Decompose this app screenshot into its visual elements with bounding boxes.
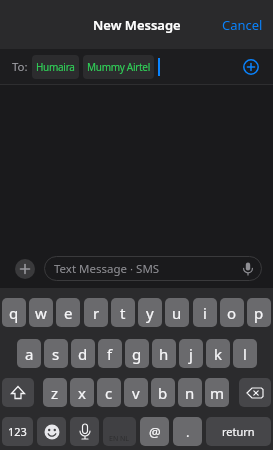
staticText: Humaira — [36, 60, 75, 74]
staticText: m — [210, 383, 225, 403]
staticText: i — [203, 303, 207, 323]
staticText: New Message — [93, 16, 181, 34]
staticText: a — [25, 344, 34, 364]
button[interactable] — [239, 378, 271, 407]
button[interactable]: r — [84, 298, 108, 327]
staticText: f — [107, 344, 113, 364]
staticText: Mummy Airtel — [87, 60, 150, 74]
button[interactable]: o — [220, 298, 244, 327]
staticText: g — [132, 344, 142, 364]
button[interactable]: x — [70, 378, 94, 407]
button[interactable]: s — [44, 339, 68, 368]
button[interactable] — [2, 378, 34, 407]
staticText: l — [243, 344, 247, 364]
button[interactable]: z — [43, 378, 67, 407]
button[interactable]: y — [138, 298, 162, 327]
button[interactable]: @ — [140, 417, 169, 446]
staticText: j — [189, 344, 193, 364]
button[interactable]: v — [124, 378, 148, 407]
staticText: e — [64, 303, 73, 323]
staticText: u — [172, 303, 182, 323]
button[interactable]: g — [125, 339, 149, 368]
button[interactable]: w — [29, 298, 53, 327]
button[interactable]: EN NL — [103, 417, 136, 446]
staticText: 123 — [8, 424, 27, 439]
button[interactable]: a — [17, 339, 41, 368]
button[interactable]: f — [98, 339, 122, 368]
staticText: return — [222, 424, 255, 439]
button[interactable]: k — [206, 339, 230, 368]
button[interactable]: c — [97, 378, 121, 407]
staticText: b — [158, 383, 168, 403]
button[interactable]: m — [205, 378, 229, 407]
button[interactable]: d — [71, 339, 95, 368]
staticText: n — [185, 383, 195, 403]
button[interactable]: e — [56, 298, 80, 327]
button[interactable]: t — [111, 298, 135, 327]
staticText: EN NL — [109, 434, 130, 444]
staticText: h — [159, 344, 169, 364]
button[interactable]: b — [151, 378, 175, 407]
button[interactable]: 123 — [2, 417, 33, 446]
button[interactable]: Text Message · SMS — [44, 256, 262, 281]
staticText: x — [78, 383, 86, 403]
button[interactable]: h — [152, 339, 176, 368]
button[interactable] — [37, 417, 66, 446]
button[interactable] — [70, 417, 99, 446]
staticText: z — [51, 383, 59, 403]
button[interactable] — [243, 59, 259, 75]
staticText: c — [105, 383, 113, 403]
staticText: y — [146, 303, 154, 323]
button[interactable]: Mummy Airtel — [87, 60, 150, 74]
staticText: @ — [149, 423, 161, 441]
button[interactable]: q — [2, 298, 26, 327]
button[interactable]: return — [206, 417, 271, 446]
button[interactable]: n — [178, 378, 202, 407]
button[interactable]: u — [165, 298, 189, 327]
staticText: k — [214, 344, 223, 364]
button[interactable]: j — [179, 339, 203, 368]
staticText: o — [227, 303, 237, 323]
staticText: v — [132, 383, 140, 403]
button[interactable] — [15, 259, 35, 279]
button[interactable]: Cancel — [222, 16, 263, 34]
button[interactable]: Humaira — [36, 60, 75, 74]
button[interactable]: i — [193, 298, 217, 327]
staticText: To: — [12, 59, 28, 75]
staticText: s — [52, 344, 60, 364]
staticText: d — [78, 344, 88, 364]
button[interactable]: . — [173, 417, 202, 446]
staticText: w — [35, 303, 47, 323]
staticText: . — [186, 423, 190, 441]
staticText: r — [93, 303, 100, 323]
button[interactable]: l — [233, 339, 257, 368]
staticText: t — [120, 303, 126, 323]
staticText: p — [254, 303, 264, 323]
staticText: Text Message · SMS — [54, 261, 160, 277]
staticText: Cancel — [222, 16, 263, 34]
button[interactable]: p — [247, 298, 271, 327]
staticText: q — [9, 303, 19, 323]
